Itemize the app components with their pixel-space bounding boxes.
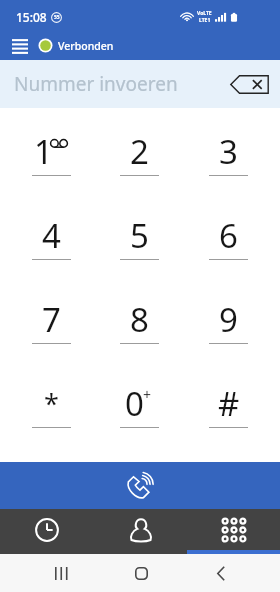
button[interactable]: 8 <box>95 285 184 369</box>
button[interactable]: Recents <box>0 509 94 554</box>
staticText: Nummer invoeren <box>14 71 178 97</box>
button[interactable]: Recent apps <box>0 554 108 592</box>
button[interactable]: 1 <box>7 117 95 201</box>
button[interactable]: 6 <box>184 201 273 285</box>
staticText: 4 <box>42 213 61 258</box>
button[interactable]: * <box>7 369 95 453</box>
staticText: 5 <box>130 213 149 258</box>
staticText: # <box>218 381 240 426</box>
staticText: 0 <box>125 381 144 426</box>
staticText: 2 <box>130 129 149 174</box>
staticText: 15:08 <box>16 9 47 25</box>
button[interactable]: 0 <box>95 369 184 453</box>
button[interactable]: 2 <box>95 117 184 201</box>
staticText: 7 <box>42 297 61 342</box>
button[interactable]: 5 <box>95 201 184 285</box>
staticText: 3 <box>219 129 238 174</box>
button[interactable]: 3 <box>184 117 273 201</box>
staticText: VoLTE <box>197 10 212 17</box>
staticText: Verbonden <box>58 39 114 53</box>
staticText: 8 <box>130 297 149 342</box>
button[interactable]: Keypad <box>187 509 280 554</box>
staticText: LTE1 <box>199 17 211 24</box>
button[interactable]: 9 <box>184 285 273 369</box>
button[interactable]: Call <box>0 462 280 509</box>
staticText: 1 <box>34 129 53 174</box>
button[interactable]: 4 <box>7 201 95 285</box>
button[interactable]: # <box>184 369 273 453</box>
staticText: 55 <box>54 14 60 21</box>
button[interactable]: Backspace <box>225 69 273 99</box>
button[interactable]: Menu <box>11 36 29 56</box>
staticText: + <box>143 385 152 404</box>
staticText: 6 <box>219 213 238 258</box>
staticText: * <box>44 385 59 422</box>
staticText: 9 <box>219 297 238 342</box>
button[interactable]: Home <box>108 554 174 592</box>
button[interactable]: 7 <box>7 285 95 369</box>
button[interactable]: Back <box>174 554 280 592</box>
button[interactable]: Contacts <box>94 509 187 554</box>
